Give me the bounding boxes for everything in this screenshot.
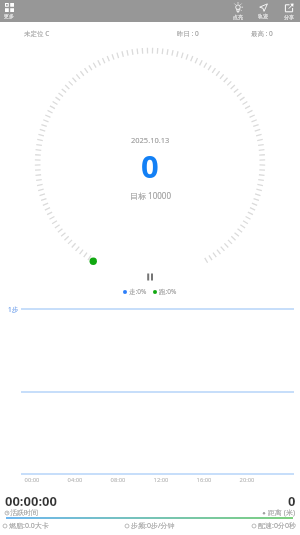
staticText: 走:0% [129,287,147,296]
button[interactable]: 暂停 [146,272,154,280]
button[interactable]: 配速:0分0秒 [200,521,296,531]
staticText: 目标 10000 [130,190,171,201]
staticText: 点亮 [233,14,243,20]
button[interactable]: 更多 [0,0,18,22]
staticText: 步频:0步/分钟 [131,521,175,531]
other: 点亮 [233,3,243,13]
staticText: 08:00 [107,476,129,484]
staticText: 最高 : 0 [251,29,273,38]
staticText: 更多 [4,13,14,19]
staticText: 燃脂:0.0大卡 [9,521,49,531]
staticText: 2025.10.13 [131,135,170,145]
staticText: 未定位 C [24,29,50,38]
button[interactable]: 步频:0步/分钟 [100,521,200,531]
staticText: 轨迹 [258,13,268,19]
button[interactable]: 分享 [280,0,298,22]
staticText: 04:00 [64,476,86,484]
staticText: 0 [141,145,159,187]
staticText: 配速:0分0秒 [258,521,296,531]
staticText: 16:00 [193,476,215,484]
staticText: 20:00 [236,476,258,484]
other: 分享 [284,3,294,13]
staticText: 距离 (米) [268,508,296,518]
staticText: 1步 [8,305,19,314]
button[interactable]: 轨迹 [254,0,272,22]
other: 更多 [5,3,14,12]
staticText: 活跃时间 [10,508,38,517]
staticText: 跑:0% [159,287,177,296]
staticText: 00:00:00 [5,492,57,510]
button[interactable]: 点亮 [229,0,247,22]
staticText: 12:00 [150,476,172,484]
staticText: 0 [288,492,296,510]
other: 轨迹 [259,3,268,12]
staticText: 分享 [284,14,294,20]
staticText: 00:00 [21,476,43,484]
staticText: 昨日 : 0 [177,29,199,38]
button[interactable]: 燃脂:0.0大卡 [3,521,100,531]
